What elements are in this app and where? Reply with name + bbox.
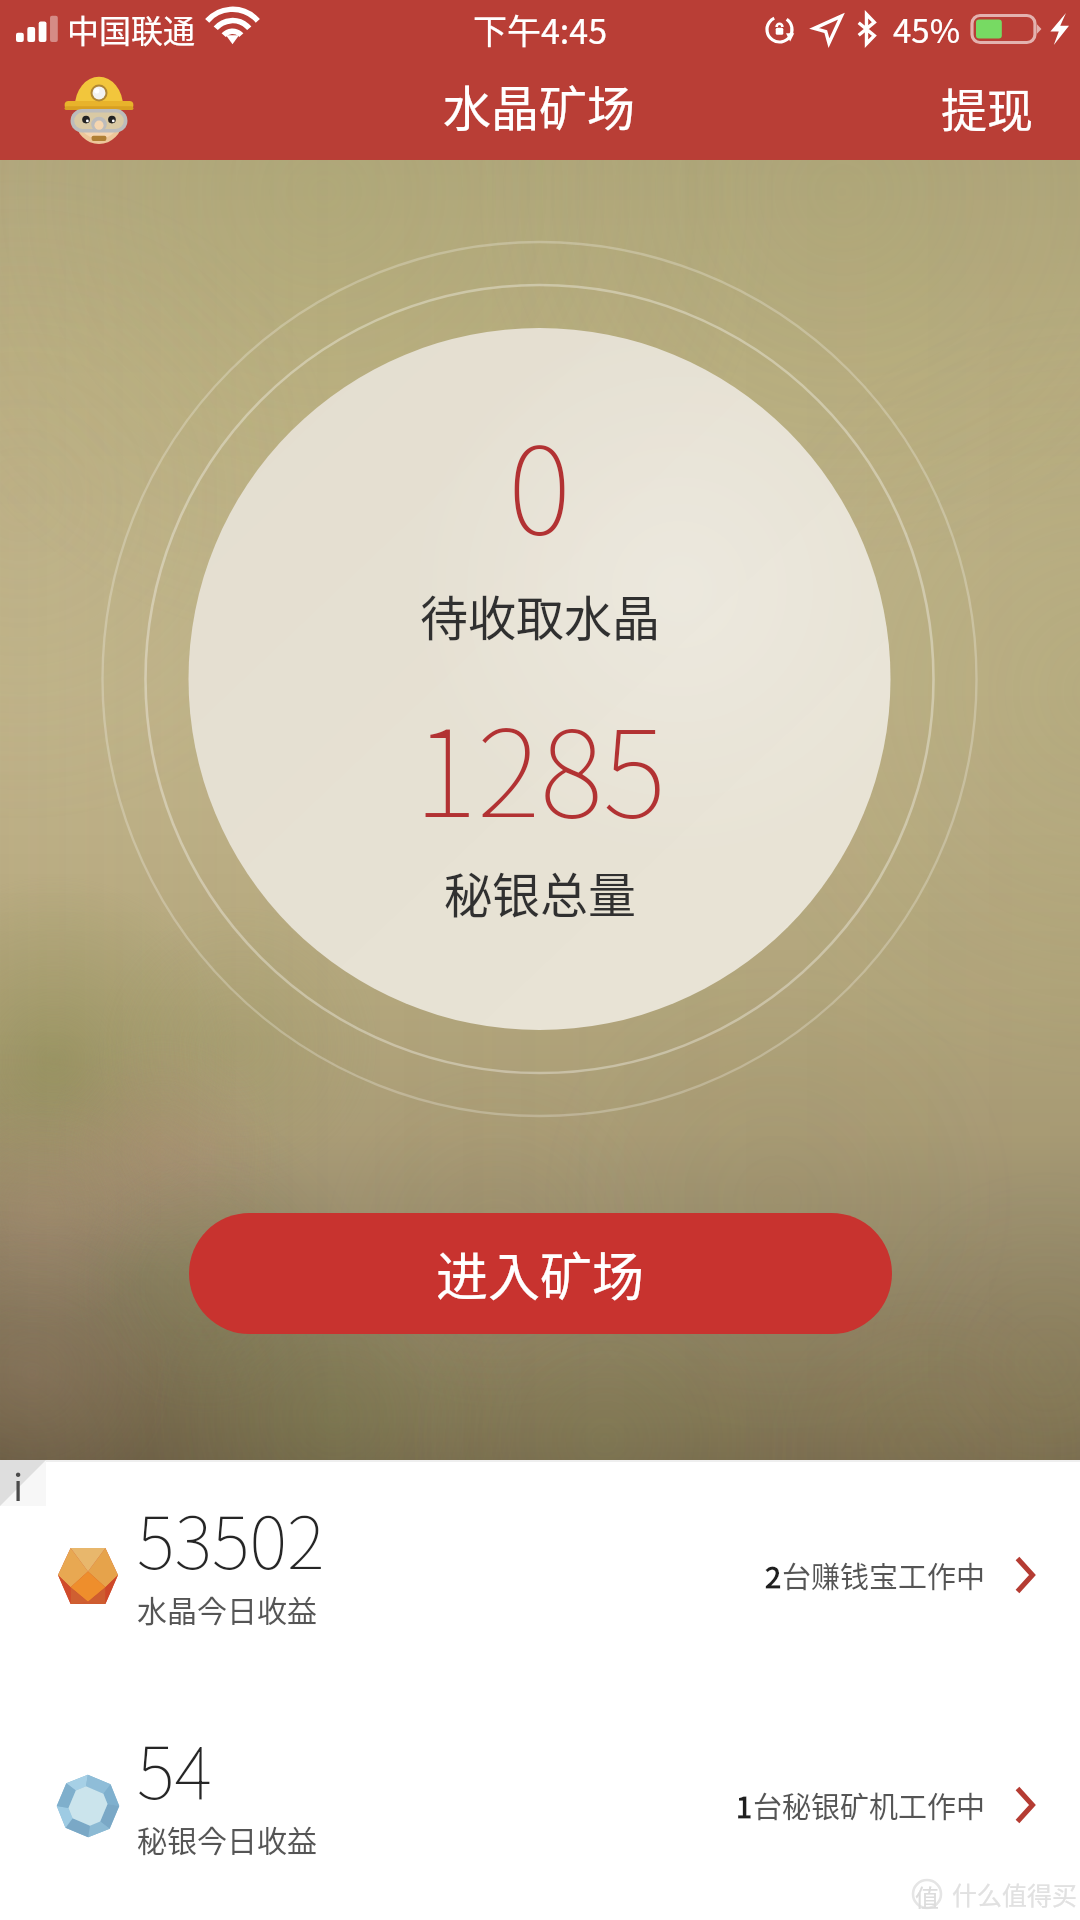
staticText: 水晶矿场: [443, 70, 636, 140]
staticText: 台赚钱宝工作中: [782, 1554, 986, 1596]
staticText: i: [13, 1458, 24, 1512]
staticText: 进入矿场: [436, 1236, 645, 1311]
staticText: 45%: [893, 5, 961, 53]
button[interactable]: 53502: [0, 1460, 1080, 1689]
staticText: 中国联通: [67, 6, 196, 52]
staticText: 2: [765, 1554, 782, 1596]
staticText: 秘银今日收益: [137, 1817, 317, 1860]
button[interactable]: 进入矿场: [189, 1213, 892, 1334]
button[interactable]: 54: [0, 1690, 1080, 1919]
staticText: 待收取水晶: [420, 580, 661, 650]
staticText: 台秘银矿机工作中: [753, 1784, 986, 1826]
staticText: 53502: [137, 1485, 325, 1589]
button[interactable]: Profile: [60, 69, 138, 147]
staticText: 1285: [414, 677, 667, 852]
button[interactable]: 提现: [931, 62, 1043, 153]
staticText: 下午4:45: [473, 5, 608, 54]
staticText: 什么值得买: [952, 1876, 1078, 1912]
staticText: 秘银总量: [444, 857, 637, 927]
staticText: 提现: [941, 74, 1033, 141]
staticText: 54: [137, 1715, 213, 1819]
staticText: 1: [736, 1784, 753, 1826]
staticText: 水晶今日收益: [137, 1587, 317, 1630]
staticText: 0: [508, 394, 572, 569]
staticText: 值: [915, 1879, 939, 1909]
